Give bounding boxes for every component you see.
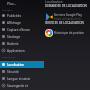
button[interactable]: Services Google Play [44, 12, 90, 21]
staticText: PERSONNEL [2, 55, 16, 58]
button[interactable]: Capture d'écran [0, 26, 44, 33]
button[interactable]: Publicités [0, 12, 44, 19]
staticText: Stockage [7, 35, 21, 39]
button[interactable]: Applications [0, 47, 44, 54]
button[interactable]: Sauvegarde et réinitialisation [0, 82, 44, 89]
button[interactable]: Localisation [0, 61, 44, 68]
button[interactable]: Langue et saisie [0, 75, 44, 82]
staticText: Publicités [7, 14, 21, 18]
staticText: Applications [7, 49, 25, 53]
staticText: Langue et saisie [7, 77, 31, 81]
staticText: Capture d'écran [7, 28, 30, 32]
button[interactable]: Batterie [0, 40, 44, 47]
staticText: Services Google Play [54, 13, 82, 17]
staticText: Historique de position [54, 31, 85, 35]
button[interactable]: Affichage [0, 19, 44, 26]
staticText: Localisation [7, 63, 25, 67]
staticText: SERVICES DE LOCALISATION [45, 21, 84, 25]
staticText: Batterie [7, 42, 19, 46]
staticText: Faible utilisation de la batterie [54, 17, 90, 21]
staticText: Localisation [45, 0, 63, 4]
button[interactable]: Historique de position [44, 28, 90, 37]
staticText: Plus... [7, 1, 17, 6]
button[interactable]: Stockage [0, 33, 44, 40]
button[interactable]: Sécurité [0, 68, 44, 75]
staticText: Affichage [7, 21, 21, 25]
staticText: APPAREIL [2, 8, 13, 11]
staticText: Sauvegarde et réinitialisation [7, 84, 44, 88]
staticText: Sécurité [7, 70, 19, 74]
staticText: DEMANDES DE LOCALISATION RÉCENTES [45, 4, 90, 8]
